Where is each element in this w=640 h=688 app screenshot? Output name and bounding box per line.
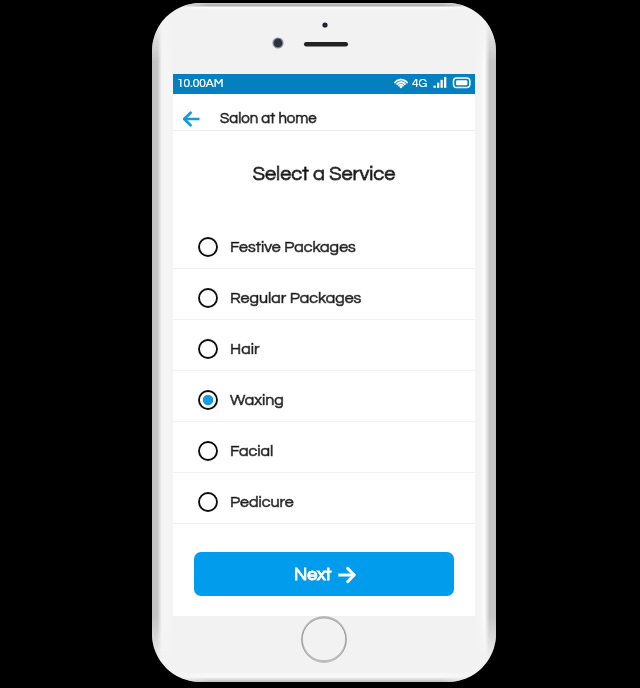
- staticText: Select a Service: [173, 164, 475, 185]
- button[interactable]: Facial: [173, 422, 475, 473]
- staticText: Facial: [230, 443, 274, 459]
- staticText: Next: [294, 565, 332, 584]
- staticText: Salon at home: [220, 111, 317, 126]
- button[interactable]: Festive Packages: [173, 218, 475, 269]
- staticText: Waxing: [230, 392, 284, 408]
- staticText: Select a Service: [173, 164, 475, 185]
- staticText: Pedicure: [230, 494, 294, 510]
- button[interactable]: Next: [194, 552, 454, 596]
- staticText: Next: [294, 565, 332, 584]
- staticText: Regular Packages: [230, 290, 362, 306]
- button[interactable]: Waxing: [173, 371, 475, 422]
- staticText: Pedicure: [230, 494, 294, 510]
- staticText: 4G: [412, 77, 428, 89]
- staticText: Hair: [230, 341, 260, 357]
- staticText: Hair: [230, 341, 260, 357]
- button[interactable]: Back: [176, 104, 206, 134]
- staticText: Festive Packages: [230, 239, 356, 255]
- button[interactable]: Hair: [173, 320, 475, 371]
- staticText: Facial: [230, 443, 274, 459]
- staticText: Festive Packages: [230, 239, 356, 255]
- button[interactable]: Pedicure: [173, 473, 475, 524]
- staticText: 10.00AM: [177, 77, 224, 89]
- button[interactable]: Regular Packages: [173, 269, 475, 320]
- staticText: Salon at home: [220, 111, 317, 126]
- staticText: Regular Packages: [230, 290, 362, 306]
- staticText: Waxing: [230, 392, 284, 408]
